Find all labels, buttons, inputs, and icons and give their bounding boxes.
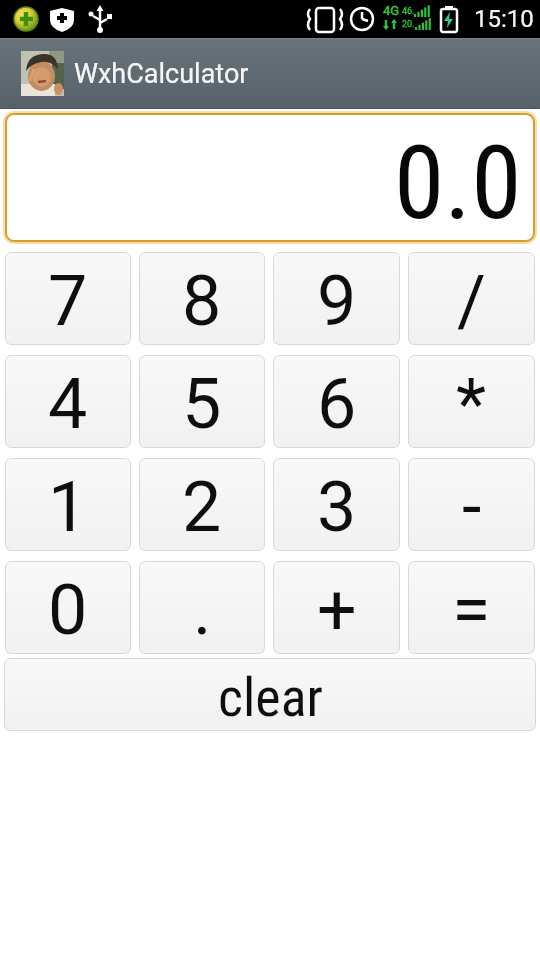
- staticText: -: [462, 466, 482, 548]
- button[interactable]: /: [408, 252, 535, 345]
- staticText: *: [456, 363, 487, 445]
- staticText: .: [193, 569, 212, 651]
- button[interactable]: .: [139, 561, 265, 654]
- button[interactable]: 2: [139, 458, 265, 551]
- staticText: 0.0: [394, 123, 522, 243]
- button[interactable]: 0: [5, 561, 131, 654]
- staticText: 1: [48, 466, 88, 548]
- button[interactable]: 6: [273, 355, 400, 448]
- staticText: +: [317, 569, 357, 651]
- staticText: 20.: [402, 19, 415, 30]
- button[interactable]: 3: [273, 458, 400, 551]
- staticText: 5: [182, 363, 222, 445]
- staticText: 9: [317, 260, 357, 342]
- staticText: 7: [48, 260, 88, 342]
- button[interactable]: clear: [4, 658, 536, 731]
- staticText: 2: [182, 466, 222, 548]
- staticText: 4: [48, 363, 88, 445]
- staticText: =: [452, 569, 491, 651]
- button[interactable]: +: [273, 561, 400, 654]
- button[interactable]: *: [408, 355, 535, 448]
- staticText: clear: [218, 666, 323, 729]
- staticText: 15:10: [474, 5, 534, 33]
- staticText: 4G: [383, 3, 400, 18]
- button[interactable]: 0.0: [4, 112, 536, 243]
- staticText: 0: [48, 569, 88, 651]
- button[interactable]: =: [408, 561, 535, 654]
- button[interactable]: 4: [5, 355, 131, 448]
- button[interactable]: -: [408, 458, 535, 551]
- staticText: WxhCalculator: [74, 58, 249, 90]
- button[interactable]: WxhCalculator: [21, 38, 540, 109]
- button[interactable]: 8: [139, 252, 265, 345]
- staticText: 8: [182, 260, 222, 342]
- staticText: /: [457, 260, 486, 342]
- button[interactable]: 5: [139, 355, 265, 448]
- button[interactable]: 9: [273, 252, 400, 345]
- staticText: 6: [317, 363, 357, 445]
- button[interactable]: 1: [5, 458, 131, 551]
- staticText: 46.: [402, 6, 415, 17]
- button[interactable]: 7: [5, 252, 131, 345]
- staticText: 3: [317, 466, 357, 548]
